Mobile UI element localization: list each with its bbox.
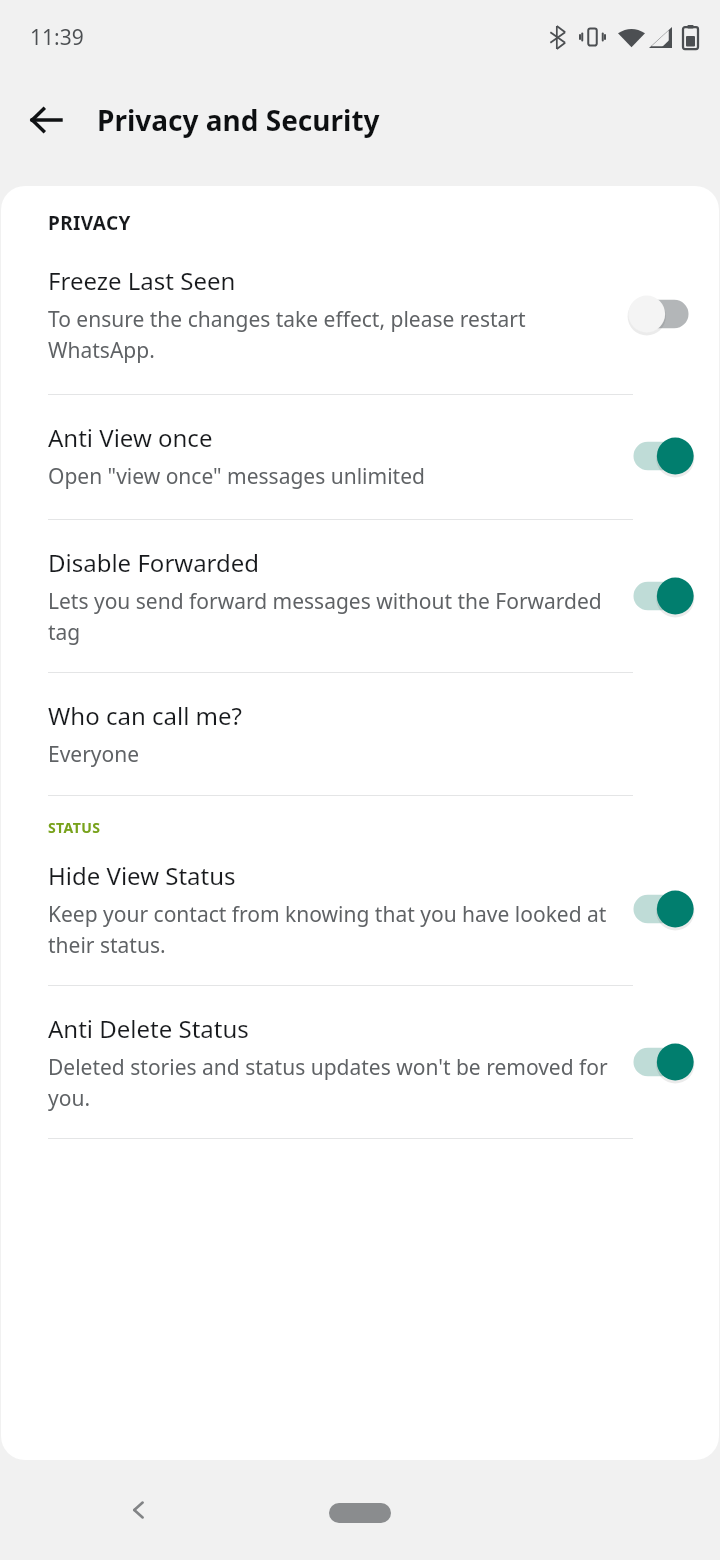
button[interactable]: Hide View Status	[1, 859, 719, 985]
button[interactable]: Toggle on	[629, 573, 693, 619]
staticText: Who can call me?	[48, 699, 242, 732]
staticText: Deleted stories and status updates won't…	[48, 1053, 617, 1112]
staticText: Privacy and Security	[97, 101, 380, 139]
staticText: Freeze Last Seen	[48, 264, 236, 297]
staticText: To ensure the changes take effect, pleas…	[48, 305, 617, 364]
button[interactable]: Who can call me?	[1, 673, 719, 795]
staticText: Anti Delete Status	[48, 1012, 249, 1045]
staticText: Disable Forwarded	[48, 546, 260, 579]
button[interactable]: Anti Delete Status	[1, 986, 719, 1138]
staticText: Keep your contact from knowing that you …	[48, 900, 617, 959]
staticText: 11:39	[30, 23, 84, 52]
button[interactable]: Back	[16, 90, 76, 150]
staticText: PRIVACY	[48, 210, 131, 236]
button[interactable]: Anti View once	[1, 395, 719, 519]
button[interactable]: Toggle off	[629, 291, 693, 337]
button[interactable]: Freeze Last Seen	[1, 260, 719, 394]
button[interactable]: Disable Forwarded	[1, 520, 719, 672]
staticText: Anti View once	[48, 421, 213, 454]
staticText: STATUS	[48, 818, 101, 837]
staticText: Everyone	[48, 740, 140, 769]
button[interactable]: Back	[110, 1480, 170, 1540]
button[interactable]: Home	[329, 1503, 391, 1523]
button[interactable]: Toggle on	[629, 1039, 693, 1085]
button[interactable]: Toggle on	[629, 433, 693, 479]
staticText: Lets you send forward messages without t…	[48, 587, 617, 646]
staticText: Open "view once" messages unlimited	[48, 462, 425, 491]
staticText: Hide View Status	[48, 859, 236, 892]
button[interactable]: Toggle on	[629, 886, 693, 932]
